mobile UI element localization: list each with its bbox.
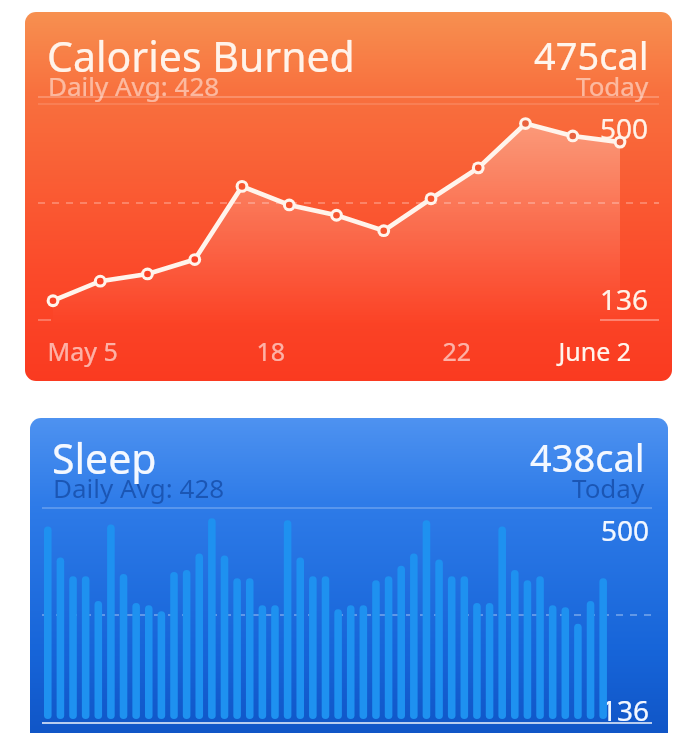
button[interactable]: Calories Burned chart <box>25 12 672 381</box>
button[interactable]: Sleep chart <box>30 418 668 733</box>
